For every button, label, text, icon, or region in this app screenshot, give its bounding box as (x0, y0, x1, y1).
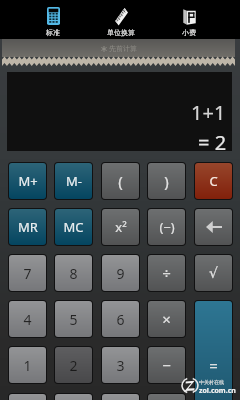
button[interactable]: 8 (55, 255, 92, 291)
button[interactable]: MC (55, 209, 92, 245)
button[interactable]: 6 (102, 301, 139, 337)
button[interactable]: 9 (102, 255, 139, 291)
staticText: = (209, 355, 218, 375)
button[interactable]: x² (102, 209, 139, 245)
staticText: 3 (116, 356, 125, 375)
button[interactable]: 5 (55, 301, 92, 337)
button[interactable]: 先前计算 (2, 39, 235, 57)
staticText: 5 (69, 310, 78, 329)
button[interactable]: 单位换算 (87, 0, 155, 39)
button[interactable]: + (148, 394, 185, 400)
staticText: ( (118, 171, 123, 191)
button[interactable]: ÷ (148, 255, 185, 291)
button[interactable]: ) (148, 163, 185, 199)
button[interactable]: MR (9, 209, 46, 245)
button[interactable]: (−) (148, 209, 185, 245)
button[interactable]: 1 (9, 347, 46, 383)
button[interactable]: 标准 (18, 0, 87, 39)
staticText: MR (18, 218, 38, 236)
button[interactable]: C (195, 163, 232, 199)
staticText: C (209, 172, 218, 190)
staticText: 中关村在线 (199, 379, 224, 385)
staticText: 8 (69, 264, 78, 283)
staticText: 7 (23, 264, 32, 283)
staticText: zol.com.cn (199, 386, 236, 396)
button[interactable]: 3 (102, 347, 139, 383)
staticText: 9 (116, 264, 125, 283)
staticText: √ (209, 265, 218, 281)
staticText: ÷ (162, 263, 171, 283)
staticText: (−) (159, 218, 175, 236)
button[interactable]: M+ (9, 163, 46, 199)
staticText: 6 (116, 310, 125, 329)
button[interactable]: = (195, 301, 232, 400)
button[interactable]: M- (55, 163, 92, 199)
staticText: 1+1 (191, 99, 226, 126)
button[interactable]: 0 (9, 394, 46, 400)
staticText: − (162, 355, 171, 375)
staticText: 1 (23, 356, 32, 375)
staticText: = 2 (198, 129, 227, 156)
button[interactable]: × (148, 301, 185, 337)
staticText: × (162, 309, 171, 329)
staticText: x² (115, 218, 127, 236)
button[interactable]: − (148, 347, 185, 383)
staticText: 2 (69, 356, 78, 375)
staticText: M+ (18, 172, 38, 190)
button[interactable]: . (55, 394, 92, 400)
staticText: 先前计算 (109, 44, 137, 53)
staticText: 单位换算 (107, 28, 135, 37)
button[interactable]: 小费 (155, 0, 223, 39)
button[interactable]: % (102, 394, 139, 400)
button[interactable]: Backspace (195, 209, 232, 245)
button[interactable]: 7 (9, 255, 46, 291)
button[interactable]: √ (195, 255, 232, 291)
button[interactable]: 4 (9, 301, 46, 337)
staticText: 4 (23, 310, 32, 329)
button[interactable]: ( (102, 163, 139, 199)
staticText: ) (164, 171, 169, 191)
staticText: 小费 (182, 28, 196, 37)
button[interactable]: 2 (55, 347, 92, 383)
staticText: 标准 (46, 28, 60, 37)
staticText: M- (66, 172, 82, 190)
staticText: MC (63, 218, 84, 236)
